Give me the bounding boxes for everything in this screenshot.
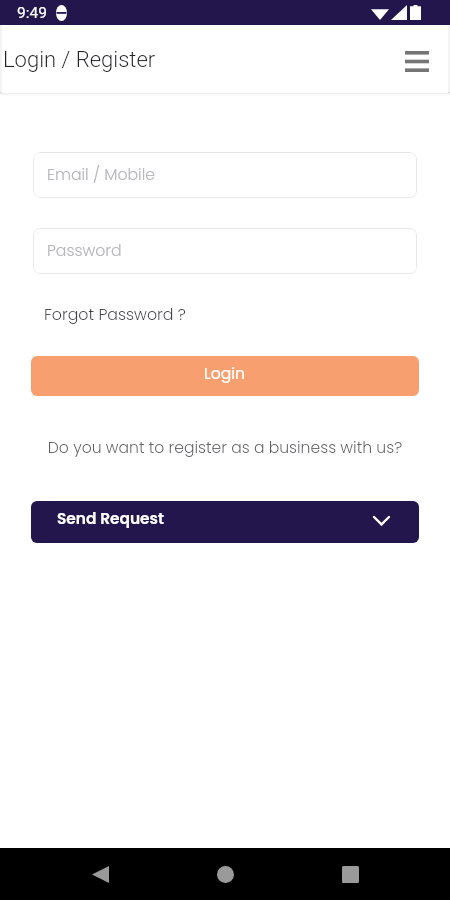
staticText: Forgot Password ?: [44, 303, 186, 325]
staticText: Login / Register: [3, 47, 156, 73]
staticText: Login: [204, 363, 246, 385]
button[interactable]: Back: [77, 850, 125, 898]
button[interactable]: Forgot Password ?: [44, 303, 186, 325]
button[interactable]: Password: [33, 228, 417, 274]
staticText: 9:49: [17, 4, 47, 22]
button[interactable]: Recent apps: [326, 850, 374, 898]
staticText: Do you want to register as a business wi…: [0, 437, 450, 459]
staticText: Password: [47, 240, 122, 262]
staticText: Send Request: [57, 508, 164, 530]
button[interactable]: Send Request: [31, 501, 419, 543]
button[interactable]: Login: [31, 356, 419, 396]
button[interactable]: Home: [201, 850, 249, 898]
button[interactable]: Menu: [394, 38, 440, 84]
staticText: Email / Mobile: [47, 164, 156, 186]
button[interactable]: Email / Mobile: [33, 152, 417, 198]
